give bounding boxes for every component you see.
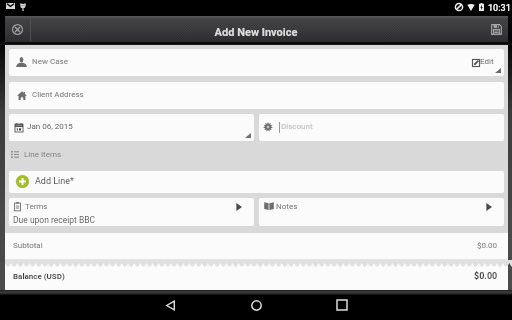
staticText: $0.00 — [474, 271, 498, 282]
staticText: Client Address — [32, 90, 84, 99]
staticText: Line Items — [24, 150, 62, 159]
staticText: $0.00 — [477, 241, 498, 250]
staticText: Jan 06, 2015 — [27, 122, 73, 131]
staticText: Add New Invoice — [0, 26, 512, 39]
button[interactable]: Client Address — [9, 82, 504, 109]
staticText: Notes — [276, 202, 298, 211]
button[interactable]: Terms — [9, 198, 254, 226]
button[interactable]: Back — [126, 290, 214, 320]
button[interactable]: Home — [212, 290, 300, 320]
staticText: 10:31 — [488, 3, 511, 14]
staticText: Balance (USD) — [13, 272, 65, 281]
staticText: Terms — [25, 202, 48, 211]
staticText: Due upon receipt BBC — [13, 215, 96, 225]
button[interactable]: New Case — [9, 49, 504, 76]
button[interactable]: Notes — [259, 198, 504, 226]
staticText: Subtotal — [13, 241, 43, 250]
button[interactable]: Subtotal — [5, 233, 508, 260]
button[interactable]: Jan 06, 2015 — [9, 114, 254, 141]
staticText: Edit — [480, 57, 494, 66]
button[interactable]: Close — [5, 16, 29, 42]
staticText: New Case — [32, 57, 68, 66]
button[interactable]: Discount — [259, 114, 504, 141]
button[interactable]: Recent apps — [298, 290, 386, 320]
staticText: Discount — [281, 122, 313, 131]
staticText: Add Line* — [35, 176, 74, 187]
button[interactable]: Add Line* — [9, 171, 504, 193]
button[interactable]: Save — [484, 16, 508, 42]
button[interactable]: Balance (USD) — [5, 260, 508, 290]
